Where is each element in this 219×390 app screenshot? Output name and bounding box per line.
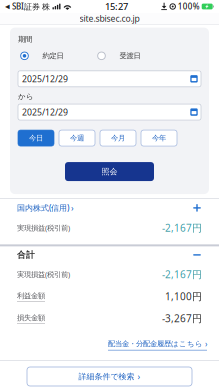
staticText: 合計: [17, 249, 35, 260]
button[interactable]: 照会: [65, 162, 154, 181]
button[interactable]: 折りたたむ: [192, 250, 202, 260]
staticText: 100%: [178, 1, 200, 12]
button[interactable]: 2025/12/29: [18, 71, 201, 87]
staticText: -2,167円: [162, 221, 202, 235]
staticText: ›: [71, 202, 74, 214]
staticText: site.sbisec.co.jp: [79, 13, 139, 24]
staticText: 損失金額: [17, 313, 45, 322]
button[interactable]: 今年: [141, 130, 177, 146]
staticText: -2,167円: [162, 268, 202, 281]
staticText: 配当金・分配金履歴はこちら: [108, 339, 203, 348]
staticText: 受渡日: [119, 51, 140, 60]
button[interactable]: 今週: [59, 130, 95, 146]
button[interactable]: site.sbisec.co.jp: [0, 13, 219, 24]
button[interactable]: 今日: [18, 130, 54, 146]
button[interactable]: 国内株式(信用): [17, 202, 74, 214]
staticText: から: [18, 92, 34, 101]
staticText: ›: [205, 338, 207, 349]
staticText: 照会: [101, 166, 117, 177]
staticText: 約定日: [42, 51, 63, 60]
staticText: -3,267円: [162, 312, 202, 325]
staticText: 実現損益(税引前): [17, 223, 70, 233]
staticText: ◀: [5, 3, 10, 10]
staticText: 今日: [29, 133, 43, 143]
staticText: 今年: [152, 133, 166, 143]
button[interactable]: 2025/12/29: [18, 104, 201, 120]
staticText: 15:27: [105, 0, 128, 13]
button[interactable]: 配当金・分配金履歴はこちら: [108, 338, 207, 350]
staticText: 今月: [111, 133, 125, 143]
staticText: 1,100円: [165, 290, 202, 303]
staticText: SBI証券 株: [10, 1, 50, 12]
button[interactable]: 今月: [100, 130, 136, 146]
button[interactable]: 展開: [192, 203, 202, 213]
staticText: 2025/12/29: [22, 73, 68, 85]
button[interactable]: 受渡日: [97, 51, 140, 61]
staticText: 利益金額: [17, 291, 45, 300]
staticText: 実現損益(税引前): [17, 269, 70, 279]
button[interactable]: 約定日: [20, 51, 63, 61]
staticText: 今週: [70, 133, 84, 143]
staticText: 詳細条件で検索: [78, 371, 134, 382]
button[interactable]: 詳細条件で検索: [27, 367, 192, 386]
staticText: 国内株式(信用): [17, 202, 69, 213]
staticText: 2025/12/29: [22, 106, 68, 118]
staticText: 期間: [18, 35, 32, 44]
staticText: ›: [137, 371, 140, 382]
